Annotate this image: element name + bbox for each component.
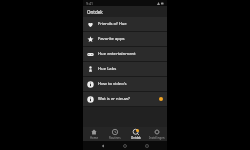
staticText: Routines xyxy=(109,136,121,140)
other: Recents xyxy=(145,144,149,148)
staticText: Hue entertainment xyxy=(98,51,163,57)
button[interactable]: Friends of Hue xyxy=(83,17,167,31)
button[interactable]: Hue entertainment xyxy=(83,47,167,61)
other: Back xyxy=(101,144,105,148)
staticText: Home xyxy=(90,136,98,140)
staticText: Friends of Hue xyxy=(98,21,163,27)
staticText: Favorite apps xyxy=(98,36,163,42)
staticText: Ontdek xyxy=(131,136,141,140)
staticText: Wat is er nieuw? xyxy=(98,96,159,102)
button[interactable]: Hue Labs xyxy=(83,62,167,76)
staticText: 9:41 xyxy=(86,1,93,6)
button[interactable]: How to video's xyxy=(83,77,167,91)
staticText: Ontdek xyxy=(87,9,103,15)
staticText: Instellingen xyxy=(149,136,165,140)
button[interactable]: Ontdek xyxy=(125,127,146,141)
staticText: How to video's xyxy=(98,81,163,87)
button[interactable]: Instellingen xyxy=(146,127,167,141)
staticText: Hue Labs xyxy=(98,66,163,72)
other: Home xyxy=(123,144,127,148)
button[interactable]: Home xyxy=(83,127,104,141)
button[interactable]: Wat is er nieuw? xyxy=(83,92,167,106)
button[interactable]: Routines xyxy=(104,127,125,141)
button[interactable]: Favorite apps xyxy=(83,32,167,46)
